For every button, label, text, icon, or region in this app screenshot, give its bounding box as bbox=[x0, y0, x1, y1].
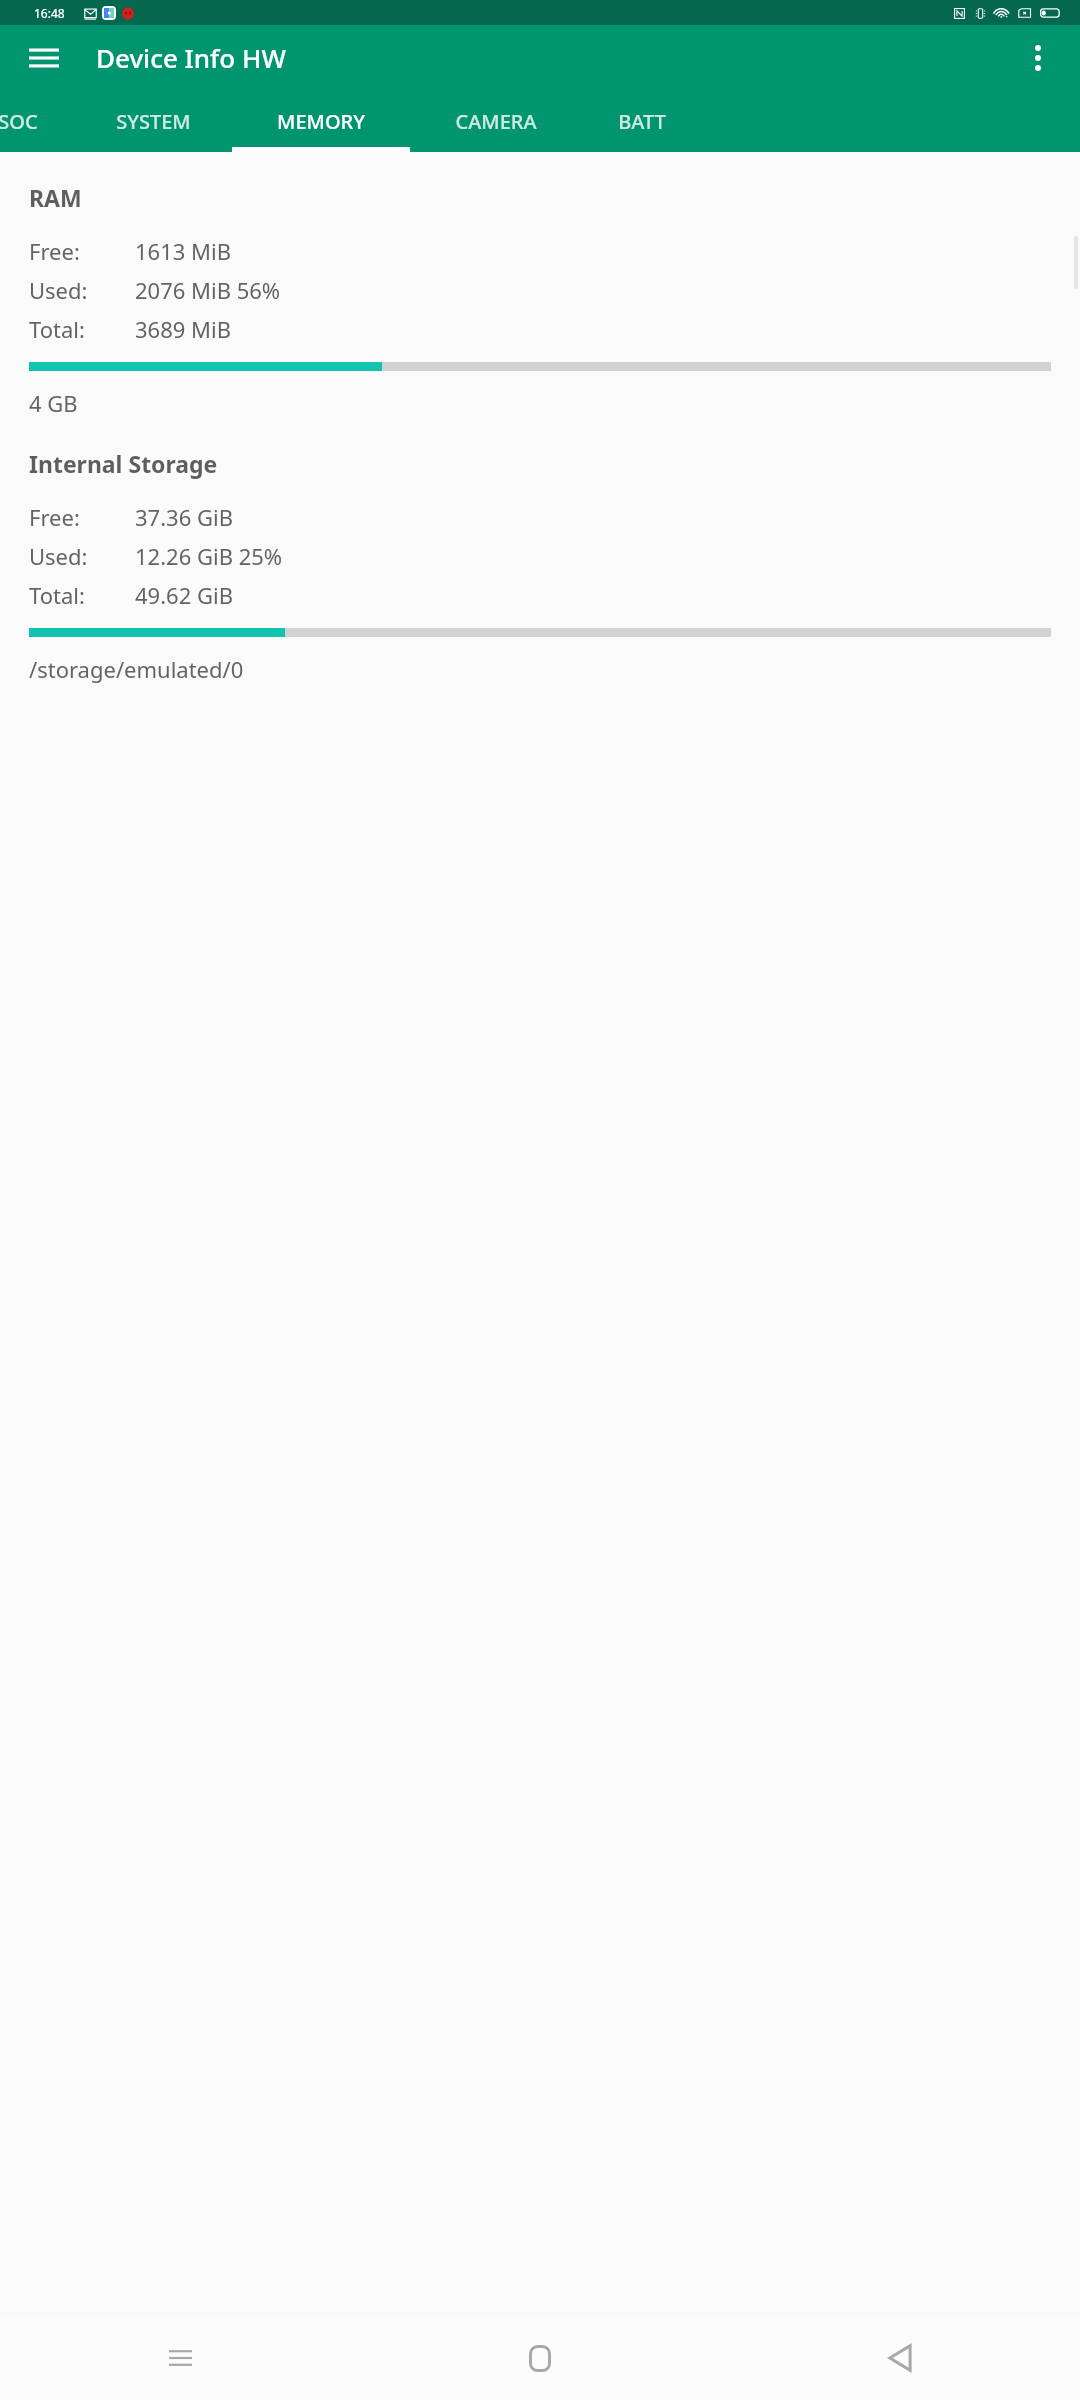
staticText: 12.26 GiB 25% bbox=[135, 541, 283, 571]
staticText: SOC bbox=[0, 108, 38, 135]
staticText: 4 GB bbox=[29, 388, 78, 418]
staticText: 3689 MiB bbox=[135, 314, 231, 344]
staticText: Free: bbox=[29, 236, 135, 266]
staticText: 16:48 bbox=[34, 5, 65, 21]
button[interactable]: Home bbox=[360, 2316, 720, 2400]
staticText: SYSTEM bbox=[116, 108, 191, 135]
staticText: Total: bbox=[29, 314, 135, 344]
button[interactable]: MEMORY bbox=[232, 90, 410, 152]
staticText: Free: bbox=[29, 502, 135, 532]
staticText: BATT bbox=[618, 108, 666, 135]
button[interactable]: SOC bbox=[0, 90, 74, 152]
staticText: 37.36 GiB bbox=[135, 502, 233, 532]
staticText: Used: bbox=[29, 275, 135, 305]
button[interactable]: CAMERA bbox=[410, 90, 582, 152]
staticText: /storage/emulated/0 bbox=[29, 654, 244, 684]
staticText: RAM bbox=[29, 182, 82, 213]
staticText: Device Info HW bbox=[96, 40, 286, 75]
button[interactable]: More options bbox=[1012, 32, 1064, 84]
button[interactable]: Open navigation drawer bbox=[18, 32, 70, 84]
staticText: Total: bbox=[29, 580, 135, 610]
button[interactable]: BATT bbox=[582, 90, 702, 152]
staticText: 2076 MiB 56% bbox=[135, 275, 281, 305]
staticText: Internal Storage bbox=[29, 448, 218, 479]
button[interactable]: Recent apps bbox=[0, 2316, 360, 2400]
staticText: CAMERA bbox=[455, 108, 537, 135]
staticText: 49.62 GiB bbox=[135, 580, 233, 610]
staticText: Used: bbox=[29, 541, 135, 571]
button[interactable]: SYSTEM bbox=[74, 90, 232, 152]
button[interactable]: Back bbox=[720, 2316, 1080, 2400]
staticText: MEMORY bbox=[277, 108, 365, 135]
staticText: 1613 MiB bbox=[135, 236, 231, 266]
